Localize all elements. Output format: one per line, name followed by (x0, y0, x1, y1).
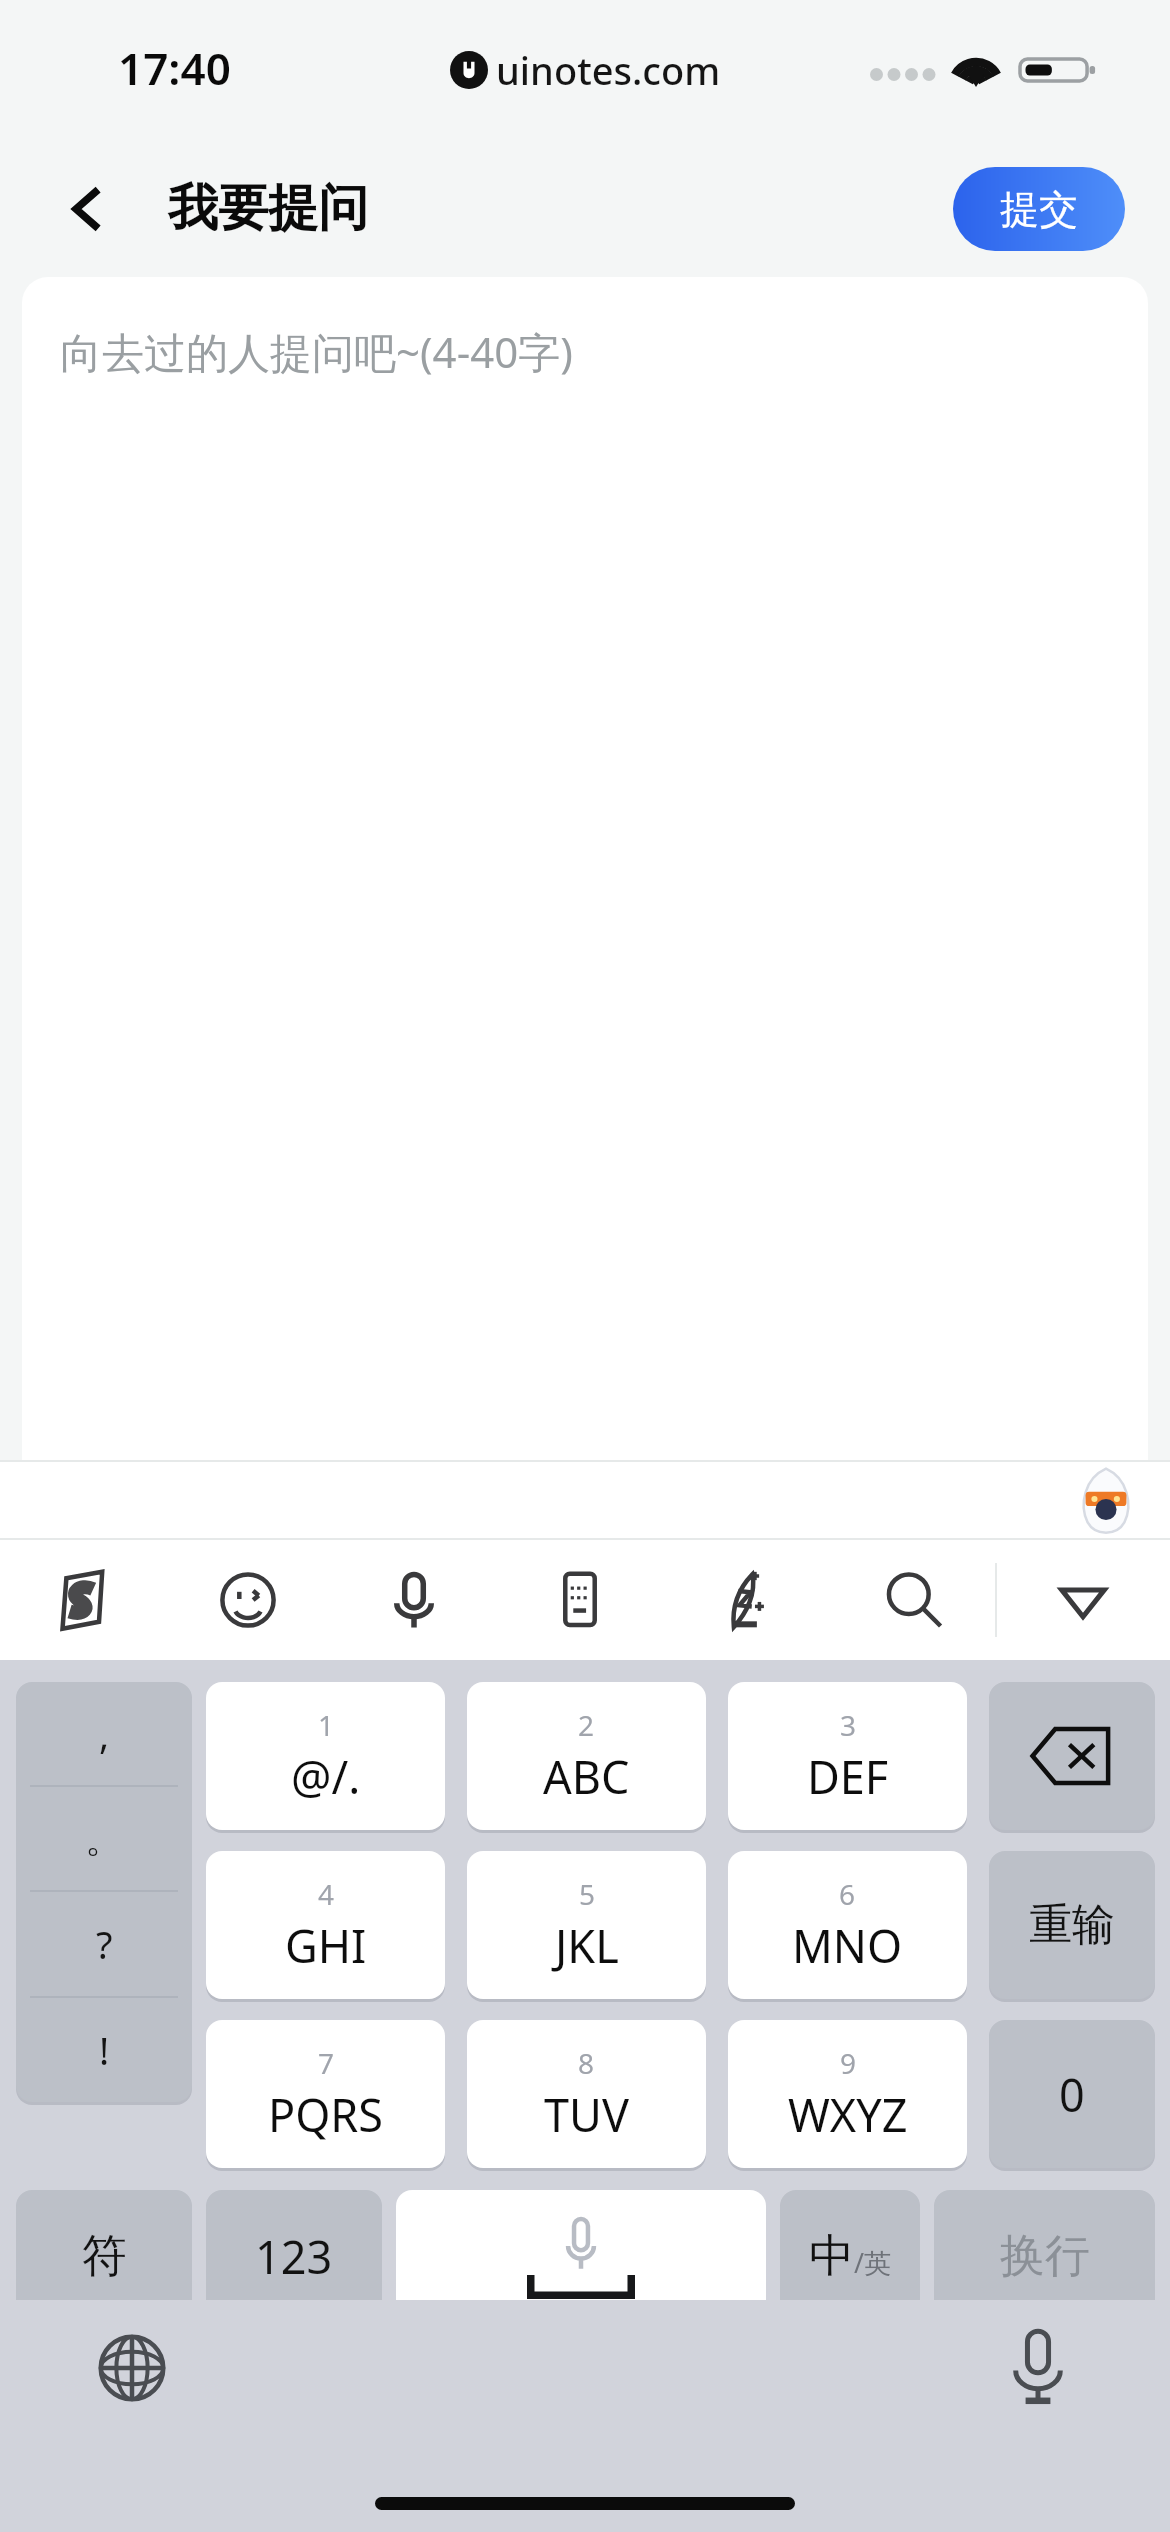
staticText: uinotes.com (496, 44, 721, 96)
button[interactable]: Sogou (0, 1540, 165, 1660)
button[interactable]: Voice input (992, 2322, 1084, 2414)
staticText: 0 (1059, 2064, 1085, 2125)
staticText: 5 (579, 1875, 596, 1913)
staticText: ABC (543, 1746, 630, 1807)
button[interactable]: , (16, 1682, 192, 2102)
button[interactable]: Sogou assistant (1072, 1466, 1140, 1534)
staticText: TUV (544, 2084, 629, 2145)
button[interactable]: Emoji (165, 1540, 331, 1660)
staticText: 向去过的人提问吧~(4-40字) (60, 323, 573, 380)
staticText: JKL (555, 1915, 619, 1976)
button[interactable]: 提交 (953, 167, 1125, 251)
staticText: MNO (792, 1915, 903, 1976)
button[interactable]: 重输 (989, 1851, 1155, 1999)
staticText: 。 (85, 1815, 123, 1863)
button[interactable]: 2 (467, 1682, 706, 1830)
staticText: 中 (809, 2228, 854, 2285)
button[interactable]: Back (50, 171, 126, 247)
button[interactable]: Space (396, 2190, 766, 2322)
button[interactable]: 5 (467, 1851, 706, 1999)
button[interactable]: 8 (467, 2020, 706, 2168)
staticText: ? (96, 1918, 113, 1970)
staticText: 重输 (1029, 1898, 1115, 1952)
button[interactable]: 7 (206, 2020, 445, 2168)
button[interactable]: 换行 (934, 2190, 1155, 2322)
staticText: 123 (255, 2226, 333, 2287)
staticText: PQRS (268, 2084, 384, 2145)
staticText: 17:40 (118, 38, 231, 98)
staticText: 1 (318, 1706, 335, 1744)
staticText: 3 (840, 1706, 857, 1744)
staticText: 6 (839, 1875, 856, 1913)
staticText: 换行 (1000, 2228, 1090, 2285)
button[interactable]: 中 (780, 2190, 920, 2322)
button[interactable]: Voice input (331, 1540, 497, 1660)
button[interactable]: Switch language (86, 2322, 178, 2414)
staticText: 4 (318, 1875, 335, 1913)
button[interactable]: 123 (206, 2190, 382, 2322)
staticText: WXYZ (788, 2084, 908, 2145)
staticText: GHI (285, 1915, 367, 1976)
staticText: 8 (578, 2044, 595, 2082)
button[interactable]: Hide keyboard (995, 1540, 1170, 1660)
staticText: 我要提问 (168, 177, 368, 240)
button[interactable]: Delete (989, 1682, 1155, 1830)
button[interactable]: 符 (16, 2190, 192, 2322)
button[interactable]: 6 (728, 1851, 967, 1999)
staticText: ! (99, 2024, 110, 2076)
button[interactable]: Search (829, 1540, 995, 1660)
button[interactable]: Handwriting (663, 1540, 829, 1660)
staticText: /英 (854, 2244, 892, 2281)
staticText: @/. (291, 1746, 361, 1807)
staticText: 7 (318, 2044, 335, 2082)
staticText: , (99, 1708, 110, 1760)
staticText: DEF (807, 1746, 889, 1807)
staticText: 2 (578, 1706, 595, 1744)
staticText: 9 (840, 2044, 857, 2082)
staticText: 提交 (1000, 185, 1078, 234)
button[interactable]: 1 (206, 1682, 445, 1830)
button[interactable]: 4 (206, 1851, 445, 1999)
button[interactable]: Keyboard layout (497, 1540, 663, 1660)
button[interactable]: 0 (989, 2020, 1155, 2168)
staticText: 符 (82, 2228, 127, 2285)
button[interactable]: 9 (728, 2020, 967, 2168)
button[interactable]: 向去过的人提问吧~(4-40字) (22, 277, 1148, 1460)
button[interactable]: 3 (728, 1682, 967, 1830)
